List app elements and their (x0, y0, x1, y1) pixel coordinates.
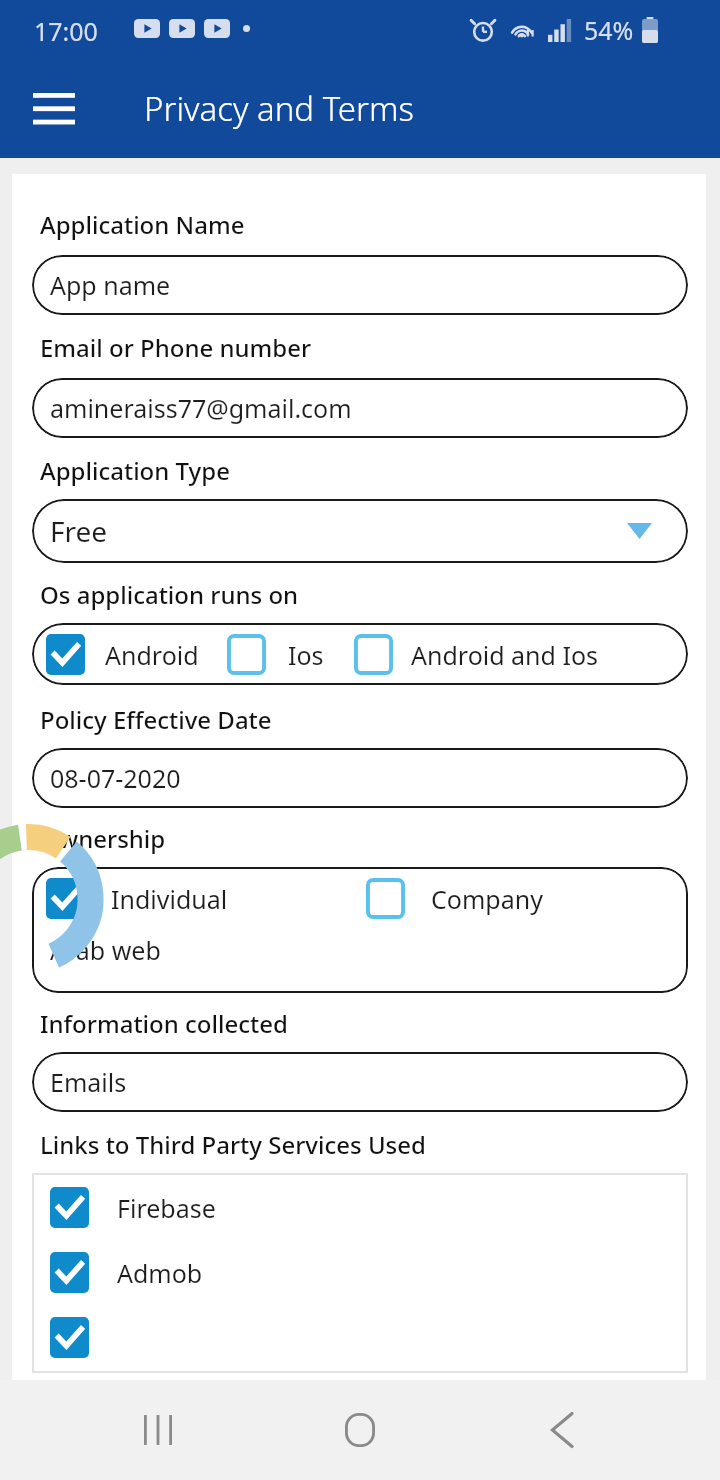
staticText: Information collected (40, 1007, 288, 1040)
button[interactable]: 08-07-2020 (32, 748, 688, 808)
staticText: Application Type (40, 454, 230, 487)
button[interactable]: Home (316, 1386, 404, 1474)
staticText: Admob (117, 1256, 203, 1290)
button[interactable]: Individual (46, 878, 228, 919)
staticText: 54% (584, 13, 634, 47)
button[interactable]: Android (46, 634, 199, 675)
staticText: Arab web (50, 933, 161, 967)
button[interactable]: Firebase (50, 1187, 688, 1228)
staticText: 17:00 (34, 14, 98, 48)
button[interactable]: amineraiss77@gmail.com (32, 378, 688, 438)
staticText: Ios (288, 638, 324, 672)
button[interactable]: Open navigation menu (22, 76, 86, 140)
staticText: Firebase (117, 1191, 216, 1225)
staticText: Free (50, 512, 108, 550)
button[interactable]: Recent apps (114, 1386, 202, 1474)
staticText: Android and Ios (411, 638, 599, 672)
staticText: Individual (111, 882, 228, 916)
staticText: Emails (50, 1065, 127, 1099)
staticText: amineraiss77@gmail.com (50, 391, 352, 425)
staticText: Os application runs on (40, 578, 299, 611)
staticText: Email or Phone number (40, 331, 312, 364)
button[interactable]: Back (518, 1386, 606, 1474)
button[interactable] (50, 1317, 688, 1358)
button[interactable]: Company (366, 878, 543, 919)
staticText: Application Name (40, 208, 245, 241)
button[interactable]: Emails (32, 1052, 688, 1112)
staticText: Ownership (40, 822, 166, 855)
staticText: Android (105, 638, 199, 672)
staticText: Policy Effective Date (40, 703, 272, 736)
button[interactable]: Free (32, 499, 688, 563)
staticText: Privacy and Terms (144, 86, 415, 131)
staticText: App name (50, 268, 171, 302)
staticText: 08-07-2020 (50, 761, 181, 795)
button[interactable]: Android and Ios (354, 634, 599, 675)
staticText: Links to Third Party Services Used (40, 1128, 426, 1161)
button[interactable]: Ios (227, 634, 324, 675)
button[interactable]: App name (32, 255, 688, 315)
button[interactable]: Admob (50, 1252, 688, 1293)
staticText: Company (431, 882, 543, 916)
